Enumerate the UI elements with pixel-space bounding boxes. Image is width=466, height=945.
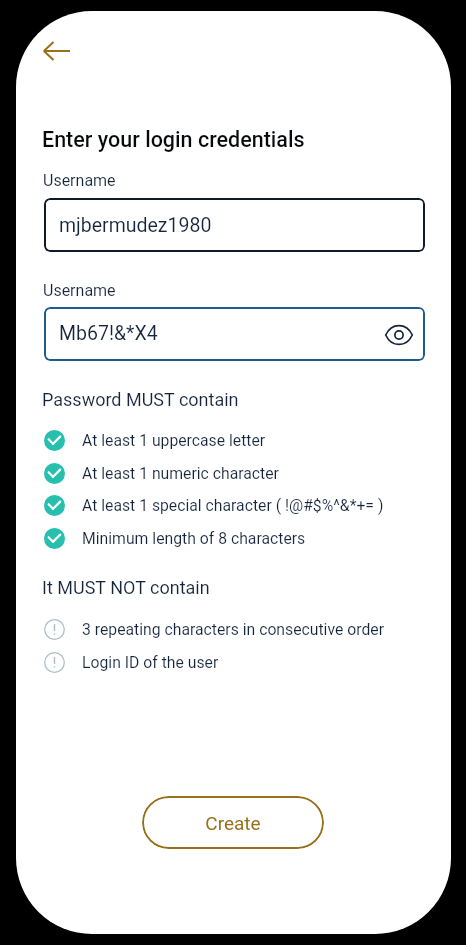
staticText: Create (205, 812, 261, 834)
button[interactable]: Back (16, 23, 71, 78)
button[interactable]: Minimum length of 8 characters (36, 522, 451, 554)
button[interactable]: Show password (383, 319, 415, 351)
staticText: At least 1 uppercase letter (82, 431, 266, 449)
staticText: Mb67!&*X4 (59, 322, 158, 345)
button[interactable]: Create (142, 796, 324, 849)
button[interactable]: 3 repeating characters in consecutive or… (36, 613, 451, 645)
button[interactable]: mjbermudez1980 (44, 198, 425, 252)
button[interactable]: At least 1 uppercase letter (36, 424, 451, 456)
button[interactable]: Login ID of the user (36, 646, 451, 678)
staticText: It MUST NOT contain (42, 577, 210, 598)
staticText: Minimum length of 8 characters (82, 529, 306, 547)
staticText: Username (43, 171, 116, 190)
staticText: Password MUST contain (42, 389, 239, 410)
staticText: At least 1 numeric character (82, 464, 279, 482)
button[interactable]: At least 1 numeric character (36, 457, 451, 489)
staticText: Username (43, 281, 116, 300)
button[interactable]: Mb67!&*X4 (44, 307, 425, 361)
staticText: Login ID of the user (82, 653, 219, 671)
staticText: At least 1 special character ( !@#$%^&*+… (82, 496, 384, 514)
staticText: mjbermudez1980 (59, 214, 212, 237)
staticText: Enter your login credentials (42, 127, 305, 152)
button[interactable]: At least 1 special character ( !@#$%^&*+… (36, 489, 451, 521)
staticText: 3 repeating characters in consecutive or… (82, 620, 384, 638)
